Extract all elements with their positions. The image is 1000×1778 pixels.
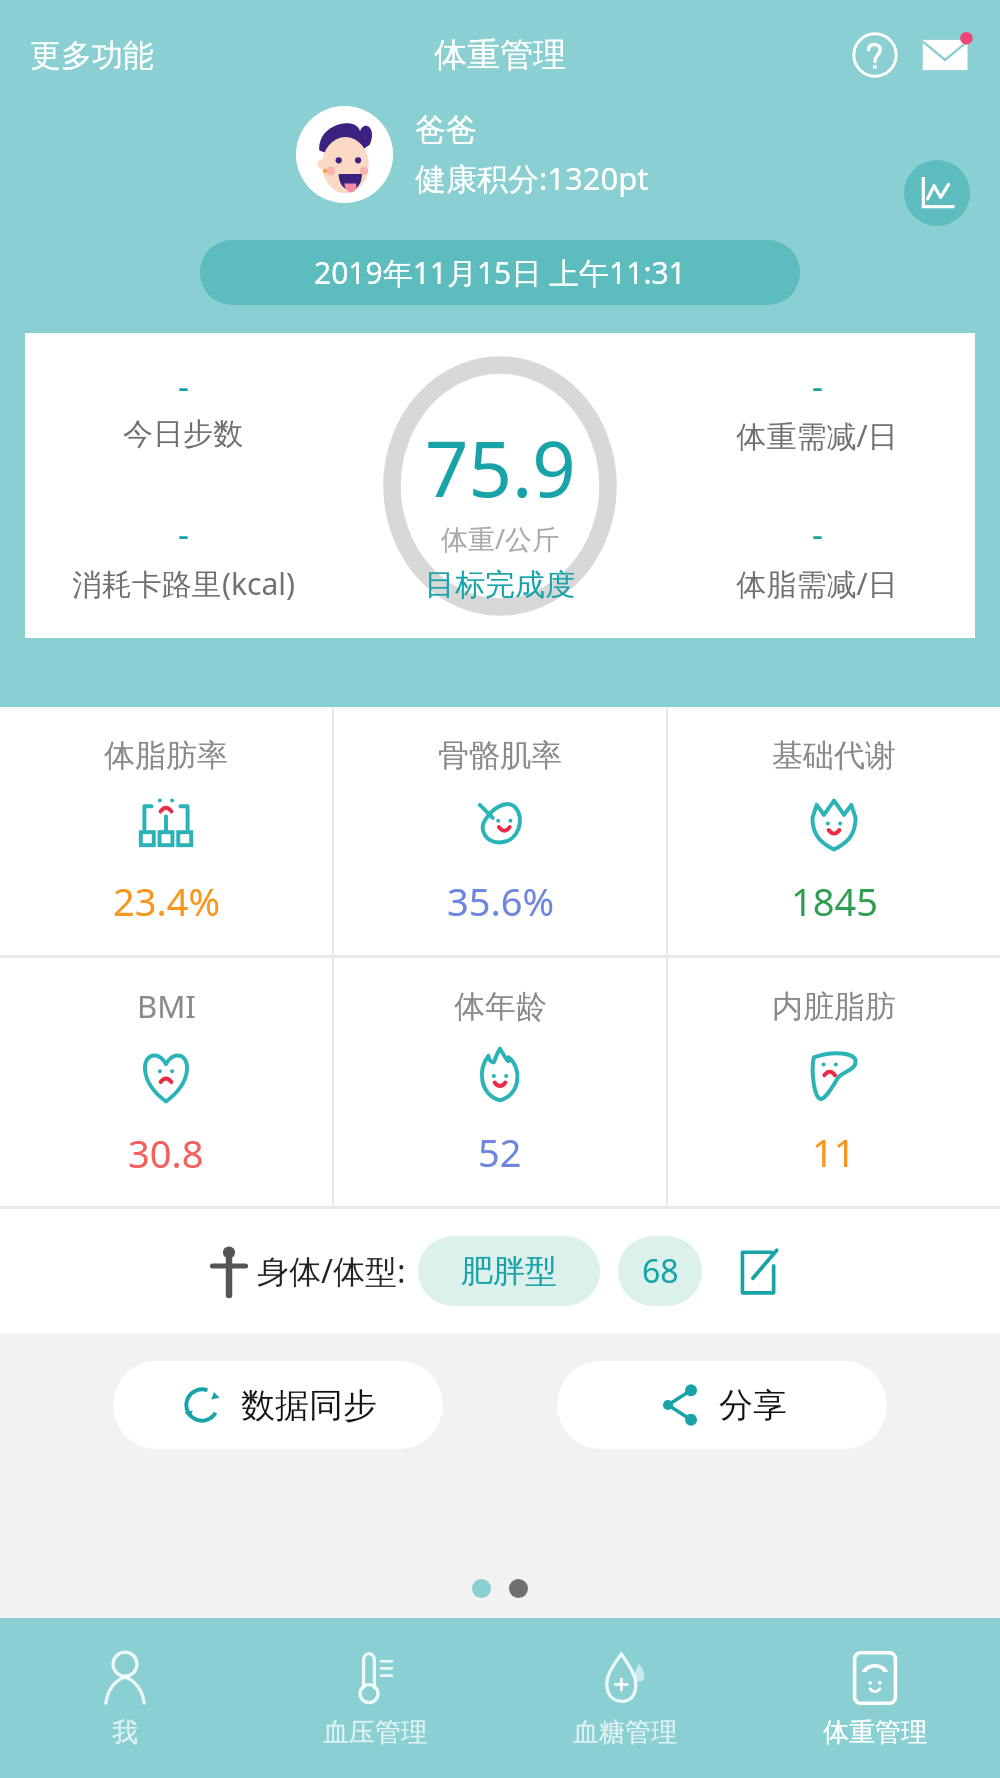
staticText: BMI (137, 985, 196, 1027)
staticText: 体年龄 (454, 987, 547, 1026)
staticText: 我 (112, 1716, 138, 1749)
button[interactable]: 基础代谢 (668, 707, 1000, 955)
button[interactable]: 血糖管理 (500, 1618, 750, 1778)
button[interactable]: 内脏脂肪 (668, 958, 1000, 1206)
staticText: 内脏脂肪 (772, 987, 896, 1026)
staticText: 体重需减/日 (736, 415, 898, 456)
staticText: 体重管理 (434, 34, 566, 76)
button[interactable]: 体脂肪率 (0, 707, 332, 955)
staticText: 52 (478, 1126, 522, 1178)
staticText: 2019年11月15日 上午11:31 (314, 252, 686, 293)
button[interactable]: Messages (916, 24, 978, 86)
button[interactable]: Help (844, 24, 906, 86)
button[interactable]: Avatar (296, 106, 393, 203)
staticText: 肥胖型 (461, 1251, 557, 1291)
staticText: - (812, 511, 823, 557)
button[interactable]: Edit (724, 1238, 790, 1304)
staticText: 1845 (791, 875, 878, 927)
button[interactable]: 更多功能 (18, 28, 166, 83)
staticText: 35.6% (447, 875, 554, 927)
staticText: 11 (812, 1126, 856, 1178)
staticText: 血压管理 (323, 1716, 427, 1749)
staticText: 68 (642, 1249, 679, 1293)
staticText: 体重管理 (823, 1716, 927, 1749)
staticText: - (178, 511, 189, 557)
button[interactable]: BMI (0, 958, 332, 1206)
button[interactable]: 2019年11月15日 上午11:31 (200, 240, 800, 305)
staticText: 健康积分:1320pt (415, 157, 649, 199)
staticText: 目标完成度 (425, 566, 575, 604)
button[interactable]: 68 (618, 1236, 702, 1306)
staticText: - (178, 363, 189, 409)
button[interactable]: 肥胖型 (418, 1236, 600, 1306)
staticText: 基础代谢 (772, 736, 896, 775)
staticText: 血糖管理 (573, 1716, 677, 1749)
staticText: 身体/体型: (257, 1249, 406, 1293)
button[interactable]: 分享 (557, 1361, 887, 1449)
staticText: - (812, 363, 823, 409)
staticText: 体重/公斤 (441, 520, 560, 557)
staticText: 体脂肪率 (104, 736, 228, 775)
staticText: 体脂需减/日 (736, 563, 898, 604)
staticText: 今日步数 (123, 415, 243, 453)
staticText: 23.4% (113, 875, 220, 927)
staticText: 骨骼肌率 (438, 736, 562, 775)
button[interactable]: 体重管理 (750, 1618, 1000, 1778)
button[interactable]: 我 (0, 1618, 250, 1778)
button[interactable]: 数据同步 (113, 1361, 443, 1449)
button[interactable]: 骨骼肌率 (334, 707, 666, 955)
button[interactable]: Chart (904, 160, 970, 226)
staticText: 30.8 (128, 1127, 204, 1179)
staticText: 爸爸 (415, 110, 477, 149)
staticText: 75.9 (425, 416, 576, 520)
button[interactable]: 血压管理 (250, 1618, 500, 1778)
staticText: 数据同步 (241, 1384, 377, 1427)
button[interactable]: 体年龄 (334, 958, 666, 1206)
staticText: 消耗卡路里(kcal) (72, 563, 295, 604)
staticText: 分享 (719, 1384, 787, 1427)
staticText: 更多功能 (30, 36, 154, 75)
